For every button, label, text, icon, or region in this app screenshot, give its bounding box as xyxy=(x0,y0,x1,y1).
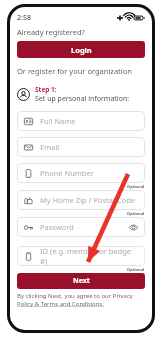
staticText: Phone Number xyxy=(40,168,138,178)
staticText: Login xyxy=(71,45,92,55)
staticText: Or register for your organization xyxy=(17,66,132,76)
staticText: Policy & Terms and Conditions. xyxy=(17,300,104,308)
staticText: 2:58 xyxy=(17,13,31,23)
staticText: Email xyxy=(40,142,138,152)
button[interactable]: My Home Zip / Postal Code xyxy=(17,190,145,210)
button[interactable]: Email xyxy=(17,137,145,157)
button[interactable]: ID (e.g. member or badge #) xyxy=(17,246,145,266)
button[interactable]: Login xyxy=(17,41,145,58)
staticText: Password xyxy=(40,222,129,232)
staticText: Optional xyxy=(127,267,145,272)
staticText: Step 1: xyxy=(35,85,57,94)
staticText: My Home Zip / Postal Code xyxy=(40,195,138,205)
button[interactable]: Password xyxy=(17,217,145,237)
staticText: Optional xyxy=(127,184,145,189)
staticText: By clicking Next, you agree to our Priva… xyxy=(17,292,133,300)
button[interactable]: Full Name xyxy=(17,111,145,131)
staticText: Next xyxy=(73,276,90,286)
staticText: ID (e.g. member or badge #) xyxy=(40,246,138,266)
staticText: Optional xyxy=(127,211,145,216)
staticText: Full Name xyxy=(40,116,138,126)
staticText: Already registered? xyxy=(17,27,85,37)
button[interactable]: Next xyxy=(17,273,145,289)
button[interactable]: Phone Number xyxy=(17,163,145,183)
staticText: Set up personal information: xyxy=(35,94,130,104)
other: Show password xyxy=(129,223,138,232)
